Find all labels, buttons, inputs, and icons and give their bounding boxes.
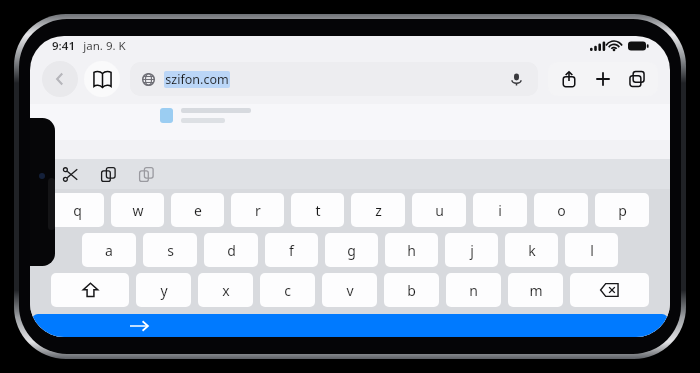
staticText: m (529, 281, 543, 300)
button[interactable]: Share (552, 62, 586, 96)
staticText: v (346, 281, 354, 300)
button[interactable]: l (565, 233, 618, 267)
button[interactable]: Tabs (620, 62, 654, 96)
staticText: s (167, 241, 174, 260)
button[interactable]: r (231, 193, 284, 227)
button[interactable]: h (385, 233, 438, 267)
button[interactable]: j (445, 233, 498, 267)
staticText: x (222, 281, 230, 300)
button[interactable]: Voice search (506, 69, 526, 89)
staticText: e (194, 201, 202, 220)
button[interactable]: y (136, 273, 191, 307)
button[interactable]: v (322, 273, 377, 307)
button[interactable]: Paste (132, 160, 160, 188)
button[interactable]: x (198, 273, 253, 307)
staticText: g (347, 241, 356, 260)
button[interactable]: m (508, 273, 563, 307)
button[interactable]: szifon.com (130, 62, 538, 96)
button[interactable]: o (534, 193, 588, 227)
button[interactable]: d (204, 233, 258, 267)
staticText: d (227, 241, 236, 260)
staticText: j (470, 241, 474, 260)
button[interactable] (32, 314, 668, 337)
button[interactable]: u (412, 193, 466, 227)
button[interactable]: n (446, 273, 501, 307)
staticText: jan. 9. K (83, 38, 126, 54)
button[interactable]: e (171, 193, 224, 227)
staticText: y (160, 281, 168, 300)
staticText: t (315, 201, 321, 220)
button[interactable]: k (505, 233, 558, 267)
button[interactable]: Shift (51, 273, 129, 307)
staticText: i (498, 201, 502, 220)
staticText: 9:41 (52, 38, 75, 54)
button[interactable]: a (82, 233, 136, 267)
button[interactable]: b (384, 273, 439, 307)
button[interactable]: g (325, 233, 378, 267)
button[interactable]: p (595, 193, 649, 227)
staticText: h (407, 241, 416, 260)
button[interactable]: s (143, 233, 197, 267)
button[interactable]: New tab (586, 62, 620, 96)
button[interactable]: w (111, 193, 164, 227)
staticText: b (407, 281, 416, 300)
staticText: q (73, 201, 82, 220)
button[interactable]: Copy (94, 160, 122, 188)
staticText: c (284, 281, 291, 300)
button[interactable]: q (51, 193, 104, 227)
staticText: w (132, 201, 144, 220)
staticText: l (590, 241, 594, 260)
button[interactable]: Bookmarks (84, 61, 120, 97)
button[interactable]: Back (42, 61, 78, 97)
staticText: k (528, 241, 536, 260)
staticText: u (435, 201, 444, 220)
button[interactable]: z (351, 193, 405, 227)
staticText: r (255, 201, 261, 220)
button[interactable]: Backspace (570, 273, 649, 307)
staticText: o (557, 201, 566, 220)
staticText: n (469, 281, 478, 300)
button[interactable]: f (265, 233, 318, 267)
button[interactable]: c (260, 273, 315, 307)
button[interactable]: t (291, 193, 344, 227)
staticText: a (105, 241, 113, 260)
staticText: z (375, 201, 382, 220)
button[interactable]: i (473, 193, 527, 227)
staticText: f (289, 241, 294, 260)
staticText: p (618, 201, 627, 220)
staticText: szifon.com (165, 71, 229, 88)
button[interactable]: Cut (56, 160, 84, 188)
